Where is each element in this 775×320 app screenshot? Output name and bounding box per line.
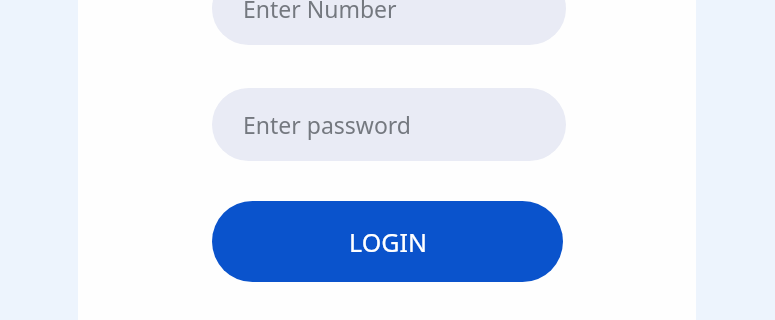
staticText: Enter password (243, 109, 412, 140)
staticText: Enter Number (243, 0, 397, 24)
button[interactable]: Enter Number (212, 0, 566, 45)
button[interactable]: LOGIN (212, 201, 563, 282)
button[interactable]: Enter password (212, 88, 566, 161)
staticText: LOGIN (349, 225, 427, 259)
